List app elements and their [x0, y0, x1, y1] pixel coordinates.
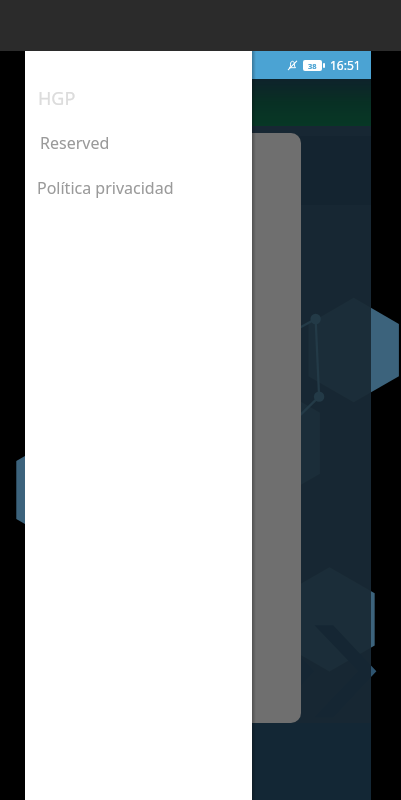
- button[interactable]: Política privacidad: [25, 173, 252, 203]
- button[interactable]: Reserved: [25, 128, 252, 158]
- staticText: HGP: [38, 86, 76, 111]
- button[interactable]: HGP: [25, 82, 252, 114]
- staticText: 16:51: [330, 57, 361, 73]
- staticText: Reserved: [40, 132, 110, 154]
- staticText: Política privacidad: [37, 177, 174, 199]
- staticText: 38: [308, 61, 317, 71]
